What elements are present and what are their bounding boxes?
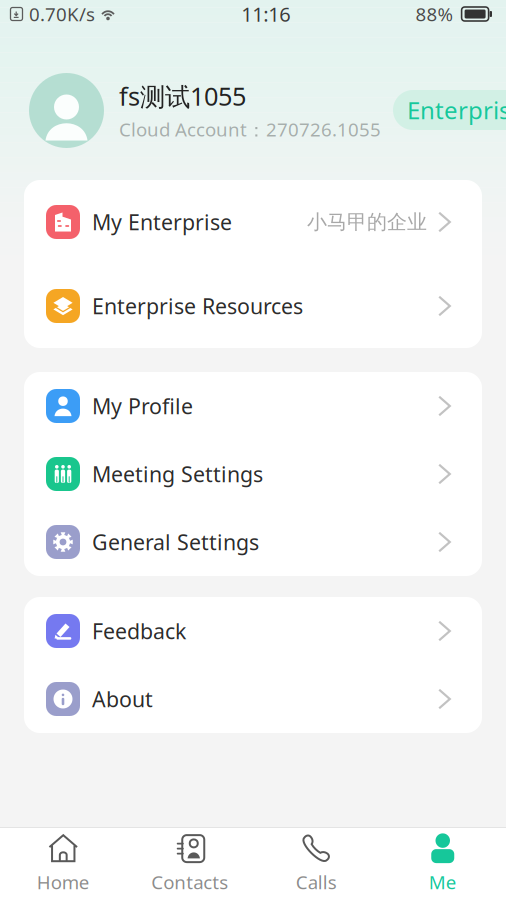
button[interactable]: General Settings — [24, 508, 482, 576]
button[interactable]: About — [24, 665, 482, 733]
button[interactable]: Meeting Settings — [24, 440, 482, 508]
staticText: Meeting Settings — [92, 460, 263, 488]
staticText: My Profile — [92, 392, 193, 420]
staticText: Cloud Account：270726.1055 — [119, 117, 381, 142]
staticText: Calls — [296, 870, 337, 894]
staticText: My Enterprise — [92, 208, 232, 236]
staticText: Home — [37, 870, 90, 894]
staticText: 0.70K/s — [29, 2, 95, 26]
staticText: Feedback — [92, 617, 186, 645]
staticText: Me — [429, 870, 457, 894]
button[interactable]: Me — [379, 828, 506, 900]
staticText: fs测试1055 — [119, 79, 246, 113]
staticText: Enterprise Resources — [92, 292, 303, 320]
staticText: 88% — [416, 2, 454, 26]
button[interactable]: My Enterprise — [24, 180, 482, 264]
button[interactable]: My Profile — [24, 372, 482, 440]
staticText: 11:16 — [241, 1, 290, 27]
staticText: Contacts — [151, 870, 228, 894]
button[interactable]: Contacts — [126, 828, 253, 900]
button[interactable]: Calls — [253, 828, 379, 900]
staticText: 小马甲的企业 — [307, 210, 427, 234]
button[interactable]: Feedback — [24, 597, 482, 665]
staticText: About — [92, 685, 153, 713]
button[interactable]: Home — [0, 828, 126, 900]
button[interactable]: Enterprise Resources — [24, 264, 482, 348]
staticText: General Settings — [92, 528, 259, 556]
staticText: Enterprise — [407, 94, 506, 126]
